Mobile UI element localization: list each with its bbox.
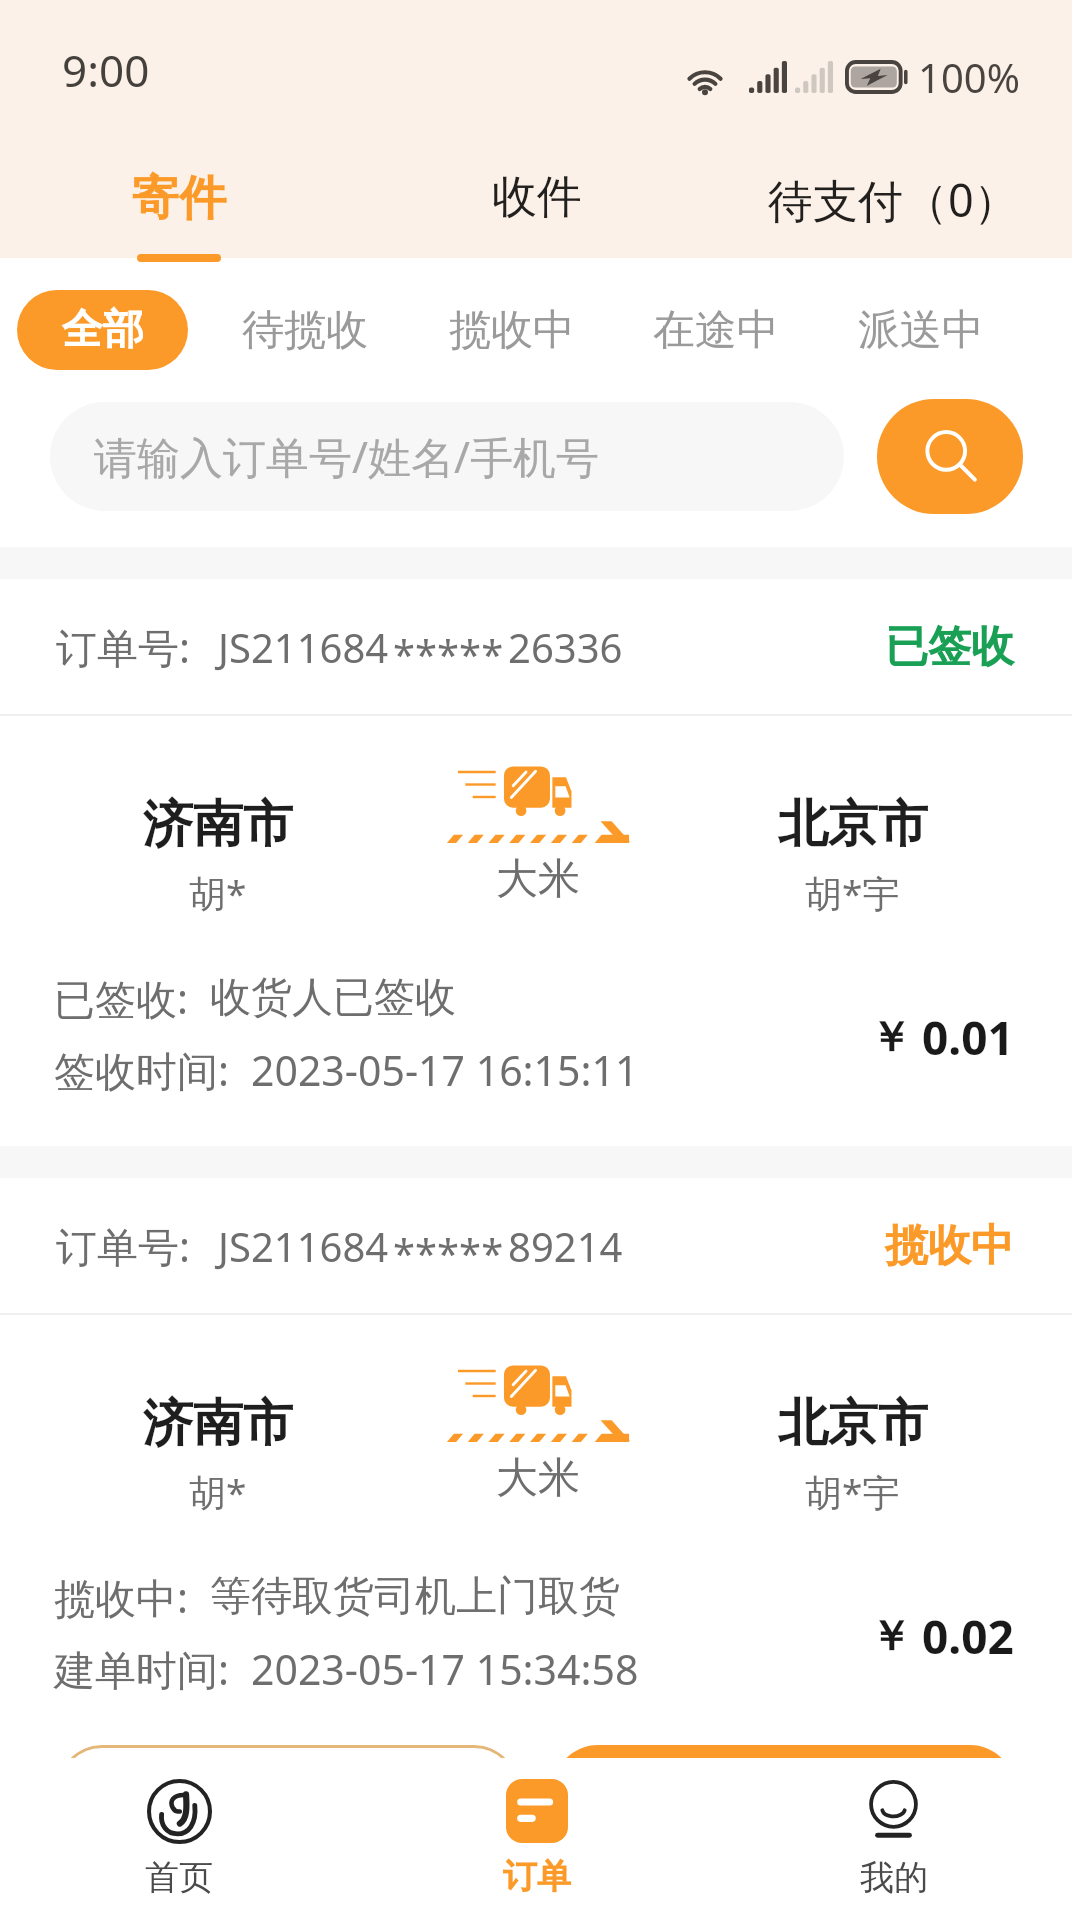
staticText: ￥ — [870, 1611, 911, 1663]
button[interactable]: 请输入订单号/姓名/手机号 — [50, 402, 844, 511]
staticText: 收货人已签收 — [210, 972, 456, 1024]
other: Orders — [506, 1779, 568, 1843]
staticText: 济南市 — [143, 1392, 293, 1455]
staticText: 大米 — [496, 1452, 580, 1505]
staticText: 揽收中: — [54, 1569, 188, 1625]
staticText: JS211684 — [218, 620, 389, 674]
staticText: 济南市 — [143, 793, 293, 856]
staticText: 揽收中 — [885, 1219, 1014, 1273]
staticText: 待揽收 — [242, 304, 368, 357]
staticText: 胡*宇 — [805, 867, 900, 918]
staticText: 订单号: — [56, 619, 190, 675]
button[interactable] — [57, 1745, 519, 1835]
button[interactable]: 寄件 — [0, 140, 358, 258]
staticText: 2023-05-17 16:15:11 — [251, 1042, 639, 1098]
staticText: 揽收中 — [449, 304, 575, 357]
staticText: ***** — [393, 626, 504, 680]
button[interactable]: 全部 — [17, 290, 188, 370]
staticText: 已签收: — [54, 970, 188, 1026]
staticText: 胡*宇 — [805, 1466, 900, 1517]
button[interactable]: Home — [0, 1758, 358, 1912]
button[interactable]: 待揽收 — [213, 290, 397, 370]
other: Home — [147, 1779, 212, 1844]
staticText: JS211684 — [218, 1219, 389, 1273]
button[interactable]: 在途中 — [624, 290, 808, 370]
button[interactable]: Profile — [715, 1758, 1072, 1912]
button[interactable]: Search — [877, 399, 1023, 514]
button[interactable]: 收件 — [358, 140, 715, 258]
button[interactable] — [553, 1745, 1015, 1835]
staticText: 签收时间: — [54, 1042, 229, 1098]
staticText: 首页 — [145, 1856, 213, 1899]
staticText: 89214 — [508, 1219, 623, 1273]
staticText: 待支付（0） — [768, 169, 1019, 230]
button[interactable]: Orders — [358, 1758, 715, 1912]
staticText: 0.01 — [922, 1006, 1014, 1069]
button[interactable]: 派送中 — [829, 290, 1013, 370]
staticText: 订单号: — [56, 1218, 190, 1274]
staticText: 胡* — [189, 1466, 247, 1517]
staticText: 2023-05-17 15:34:58 — [251, 1641, 639, 1697]
staticText: 26336 — [508, 620, 623, 674]
staticText: 我的 — [860, 1856, 928, 1899]
staticText: 等待取货司机上门取货 — [210, 1571, 620, 1623]
staticText: 全部 — [62, 304, 144, 356]
button[interactable]: 订单号: — [0, 579, 1072, 1146]
button[interactable]: 订单号: — [0, 1178, 1072, 1745]
staticText: 建单时间: — [54, 1641, 229, 1697]
staticText: 100% — [918, 50, 1020, 104]
button[interactable]: 待支付（0） — [715, 140, 1072, 258]
staticText: 已签收 — [885, 620, 1014, 674]
staticText: 大米 — [496, 853, 580, 906]
staticText: 北京市 — [778, 793, 928, 856]
staticText: 北京市 — [778, 1392, 928, 1455]
other: Profile — [861, 1779, 926, 1844]
staticText: 在途中 — [653, 304, 779, 357]
button[interactable]: 揽收中 — [420, 290, 604, 370]
staticText: 派送中 — [858, 304, 984, 357]
staticText: 9:00 — [62, 40, 150, 100]
staticText: 胡* — [189, 867, 247, 918]
staticText: ***** — [393, 1225, 504, 1279]
staticText: 请输入订单号/姓名/手机号 — [94, 427, 599, 486]
staticText: 收件 — [492, 169, 582, 226]
staticText: 寄件 — [132, 169, 226, 228]
staticText: 订单 — [503, 1855, 571, 1898]
staticText: ￥ — [870, 1012, 911, 1064]
staticText: 0.02 — [922, 1605, 1014, 1668]
